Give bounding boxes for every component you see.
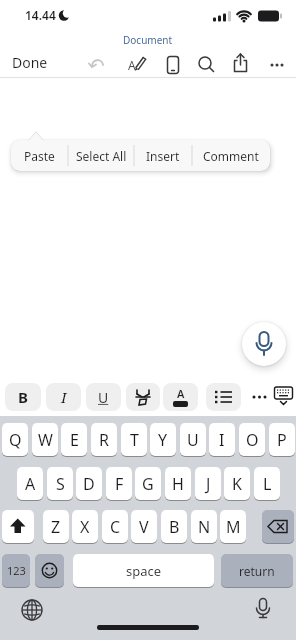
button[interactable]: W [32, 423, 58, 456]
button[interactable]: N [191, 510, 217, 543]
button[interactable]: 123 [2, 554, 30, 587]
button[interactable]: Y [150, 423, 176, 456]
button[interactable] [230, 52, 252, 76]
staticText: V [139, 516, 149, 538]
staticText: B [18, 387, 28, 407]
button[interactable]: E [61, 423, 87, 456]
staticText: return [239, 563, 275, 579]
staticText: G [142, 473, 154, 495]
button[interactable]: Paste [11, 140, 68, 171]
staticText: U [98, 388, 109, 407]
staticText: A [25, 473, 36, 495]
staticText: 123 [7, 563, 26, 578]
button[interactable]: X [72, 510, 98, 543]
button[interactable] [196, 54, 218, 76]
button[interactable] [242, 322, 286, 366]
button[interactable] [35, 554, 64, 587]
staticText: B [169, 516, 180, 538]
button[interactable]: D [76, 467, 102, 500]
button[interactable]: T [121, 423, 147, 456]
staticText: Y [158, 429, 168, 451]
button[interactable]: L [254, 467, 280, 500]
button[interactable] [251, 596, 275, 622]
button[interactable]: Select All [68, 140, 134, 171]
staticText: S [56, 473, 65, 495]
staticText: I [219, 429, 225, 451]
button[interactable]: A [163, 383, 198, 411]
staticText: L [263, 473, 272, 495]
button[interactable]: P [269, 423, 295, 456]
button[interactable]: H [165, 467, 191, 500]
button[interactable]: U [86, 383, 121, 411]
staticText: I [61, 387, 67, 407]
button[interactable]: I [46, 383, 81, 411]
button[interactable]: I [209, 423, 235, 456]
button[interactable] [2, 510, 34, 543]
button[interactable] [262, 510, 294, 543]
button[interactable] [163, 54, 185, 76]
button[interactable] [20, 598, 44, 622]
staticText: Paste [24, 148, 55, 164]
staticText: O [246, 429, 259, 451]
button[interactable]: C [102, 510, 128, 543]
button[interactable]: Z [43, 510, 69, 543]
staticText: C [110, 516, 121, 538]
button[interactable]: Insert [134, 140, 192, 171]
button[interactable] [249, 386, 271, 408]
button[interactable]: Comment [192, 140, 270, 171]
button[interactable]: A [127, 54, 149, 76]
staticText: P [277, 429, 287, 451]
button[interactable]: Q [2, 423, 28, 456]
staticText: 14.44 [25, 7, 56, 23]
button[interactable]: return [221, 554, 293, 587]
button[interactable]: G [135, 467, 161, 500]
staticText: A [177, 386, 185, 401]
button[interactable]: U [180, 423, 206, 456]
staticText: U [187, 429, 199, 451]
staticText: M [226, 516, 241, 538]
staticText: F [115, 473, 124, 495]
button[interactable]: B [5, 383, 41, 411]
staticText: E [70, 429, 79, 451]
staticText: A [128, 57, 136, 73]
staticText: Z [51, 516, 61, 538]
button[interactable] [126, 383, 160, 411]
button[interactable]: S [47, 467, 73, 500]
button[interactable]: F [106, 467, 132, 500]
staticText: D [83, 473, 95, 495]
button[interactable]: space [73, 554, 214, 587]
button[interactable]: K [224, 467, 250, 500]
staticText: T [130, 429, 139, 451]
staticText: X [80, 516, 90, 538]
button[interactable] [273, 384, 295, 408]
button[interactable]: A [17, 467, 43, 500]
button[interactable]: Done [10, 53, 50, 71]
button[interactable]: M [220, 510, 246, 543]
staticText: Done [12, 53, 48, 71]
button[interactable] [206, 383, 241, 411]
staticText: Select All [76, 148, 127, 164]
staticText: K [232, 473, 242, 495]
button[interactable] [266, 54, 288, 76]
staticText: N [198, 516, 211, 538]
staticText: R [99, 429, 109, 451]
button[interactable]: R [91, 423, 117, 456]
button[interactable]: B [161, 510, 187, 543]
staticText: W [38, 429, 53, 451]
staticText: Comment [203, 148, 259, 164]
staticText: Document [123, 33, 173, 47]
button[interactable]: V [131, 510, 157, 543]
button[interactable] [86, 54, 108, 76]
staticText: Q [9, 429, 22, 451]
staticText: Insert [146, 148, 180, 164]
staticText: H [172, 473, 184, 495]
staticText: J [206, 473, 211, 495]
staticText: space [126, 562, 162, 580]
button[interactable]: J [195, 467, 221, 500]
button[interactable]: O [239, 423, 265, 456]
